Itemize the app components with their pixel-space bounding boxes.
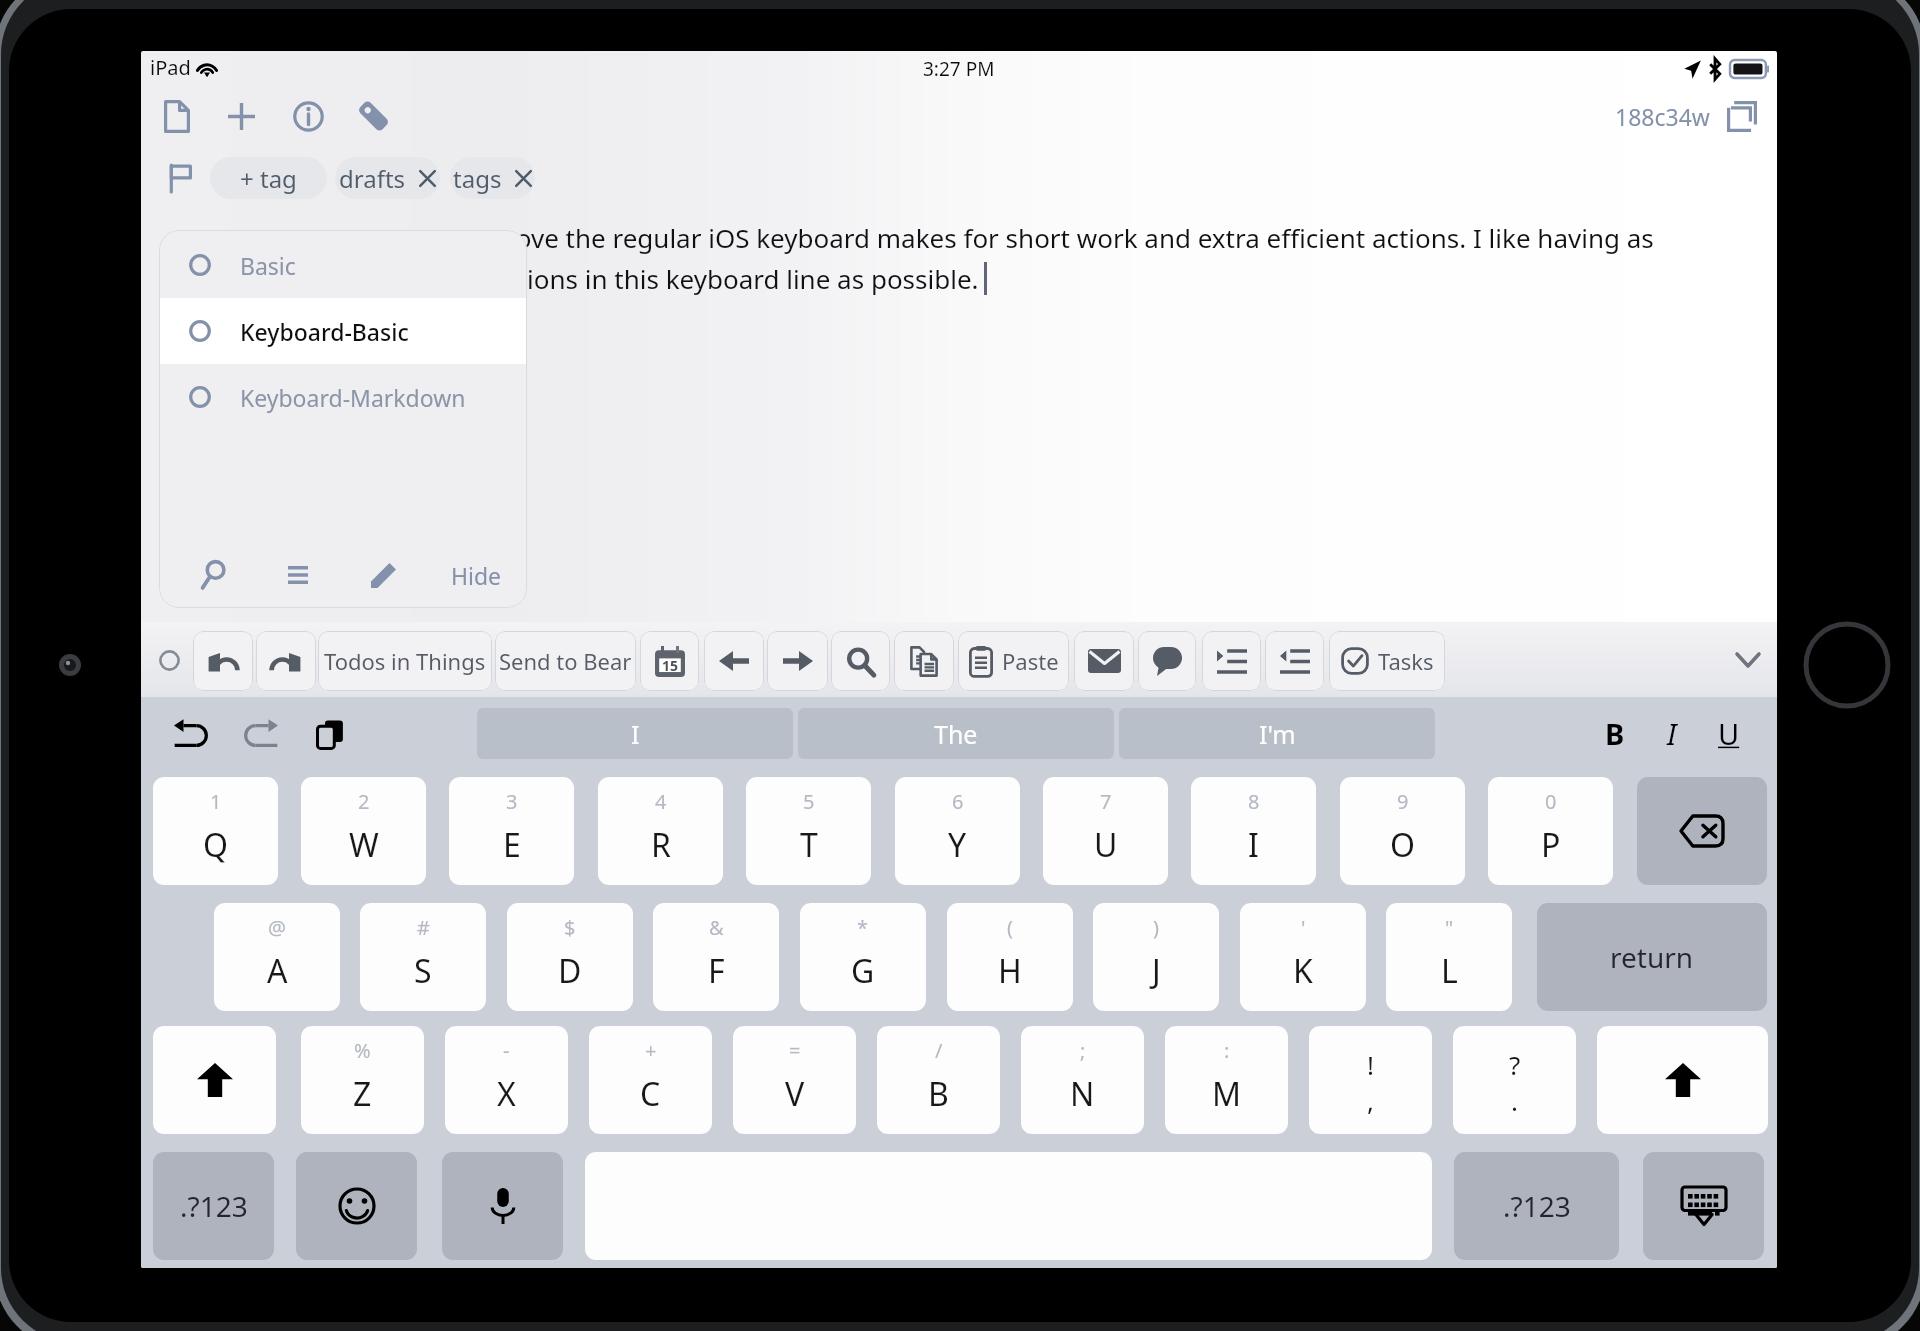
button[interactable]: % [301,1026,424,1134]
button[interactable]: Shift [1597,1026,1768,1134]
button[interactable]: Add [215,92,268,140]
button[interactable]: Collapse keyboard bar [1719,629,1777,691]
button[interactable]: ' [1240,903,1366,1011]
staticText: ? [1509,1047,1521,1082]
button[interactable]: Undo [163,706,218,761]
staticText: J [1152,949,1161,993]
button[interactable]: List [275,552,321,598]
button[interactable]: / [877,1026,1000,1134]
staticText: & [709,914,724,941]
staticText: 188c34w [1615,101,1710,132]
button[interactable]: : [1165,1026,1288,1134]
button[interactable]: Hide [442,552,510,598]
staticText: tags [453,162,502,195]
button[interactable]: Move left [704,631,764,691]
staticText: return [1610,938,1694,976]
button[interactable]: Redo [233,706,288,761]
button[interactable]: I [477,708,793,759]
button[interactable]: + tag [210,157,327,199]
button[interactable]: 1 [153,777,278,885]
button[interactable]: Edit [360,552,406,598]
button[interactable]: $ [507,903,633,1011]
button[interactable]: B [1587,706,1642,761]
button[interactable]: Find [831,631,890,691]
button[interactable]: Tag [347,92,400,140]
button[interactable]: Search [191,552,237,598]
staticText: N [1070,1072,1095,1116]
button[interactable]: 3 [449,777,574,885]
button[interactable]: Emoji [296,1152,417,1260]
button[interactable]: ( [947,903,1073,1011]
button[interactable]: New draft [150,92,203,140]
button[interactable]: The [798,708,1114,759]
button[interactable]: Hide keyboard [1643,1152,1764,1260]
button[interactable]: Flag [155,155,205,201]
staticText: ; [1080,1037,1086,1064]
staticText: 15 [662,656,679,675]
staticText: .?123 [1503,1187,1571,1225]
staticText: B [1605,714,1625,753]
button[interactable]: Todos in Things [318,631,492,691]
staticText: W [349,823,379,867]
button[interactable]: drafts [335,157,440,199]
button[interactable]: U [1701,706,1756,761]
button[interactable]: Backspace [1637,777,1767,885]
button[interactable]: Copy [894,631,954,691]
staticText: = [789,1037,801,1064]
button[interactable]: Date [640,631,699,691]
button[interactable]: * [800,903,926,1011]
button[interactable]: ; [1021,1026,1144,1134]
button[interactable]: 5 [746,777,871,885]
button[interactable]: Message [1138,631,1196,691]
button[interactable]: " [1386,903,1512,1011]
button[interactable]: Dictate [442,1152,563,1260]
staticText: Keyboard-Markdown [240,382,466,413]
button[interactable]: ? [1453,1026,1576,1134]
button[interactable]: Mail [1074,631,1134,691]
button[interactable]: Shift [153,1026,276,1134]
button[interactable]: Undo [193,631,253,691]
button[interactable]: 7 [1043,777,1168,885]
button[interactable]: Redo [256,631,316,691]
staticText: 4 [655,788,667,815]
staticText: 0 [1545,788,1557,815]
button[interactable]: # [360,903,486,1011]
button[interactable]: Open in new window [1718,92,1766,140]
button[interactable]: 0 [1488,777,1613,885]
button[interactable]: Basic [159,232,527,298]
button[interactable]: Duplicate [302,706,357,761]
button[interactable]: Numbers [1454,1152,1619,1260]
button[interactable]: 4 [598,777,723,885]
button[interactable]: I [1644,706,1699,761]
button[interactable]: Send to Bear [495,631,636,691]
button[interactable]: tags [450,157,535,199]
button[interactable]: - [445,1026,568,1134]
button[interactable]: ) [1093,903,1219,1011]
button[interactable]: & [653,903,779,1011]
button[interactable]: = [733,1026,856,1134]
button[interactable]: Indent [1202,631,1261,691]
button[interactable]: Move right [767,631,828,691]
button[interactable]: 2 [301,777,426,885]
button[interactable]: Record [152,629,186,691]
button[interactable]: Numbers [153,1152,274,1260]
staticText: G [851,949,875,993]
button[interactable]: 9 [1340,777,1465,885]
button[interactable]: Info [282,92,335,140]
staticText: M [1212,1072,1242,1116]
button[interactable]: I'm [1119,708,1435,759]
button[interactable]: Outdent [1265,631,1324,691]
button[interactable]: Return [1537,903,1767,1011]
button[interactable]: + [589,1026,712,1134]
button[interactable]: Paste [958,631,1069,691]
button[interactable]: 6 [895,777,1020,885]
button[interactable]: 8 [1191,777,1316,885]
button[interactable]: Keyboard-Basic [159,298,527,364]
button[interactable]: ! [1309,1026,1432,1134]
staticText: T [800,823,818,867]
staticText: I'm [1259,717,1296,751]
button[interactable]: @ [214,903,340,1011]
button[interactable]: Tasks [1329,631,1445,691]
button[interactable]: Keyboard-Markdown [159,364,527,430]
